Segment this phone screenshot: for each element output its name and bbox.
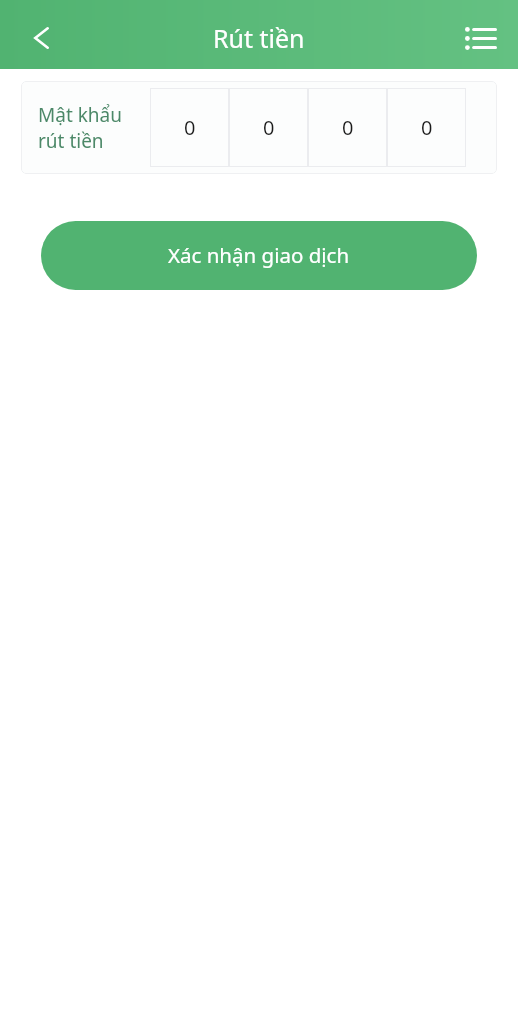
staticText: 0	[421, 114, 433, 141]
button[interactable]: Menu	[454, 8, 508, 62]
staticText: Rút tiền	[213, 21, 305, 55]
staticText: 0	[342, 114, 354, 141]
button[interactable]: 0	[308, 88, 387, 167]
button[interactable]: Back	[14, 8, 68, 62]
staticText: 0	[263, 114, 275, 141]
button[interactable]: Xác nhận giao dịch	[41, 221, 477, 290]
staticText: Mật khẩu rút tiền	[38, 102, 122, 153]
button[interactable]: 0	[229, 88, 308, 167]
staticText: Xác nhận giao dịch	[168, 241, 350, 269]
staticText: 0	[184, 114, 196, 141]
button[interactable]: 0	[150, 88, 229, 167]
button[interactable]: 0	[387, 88, 466, 167]
